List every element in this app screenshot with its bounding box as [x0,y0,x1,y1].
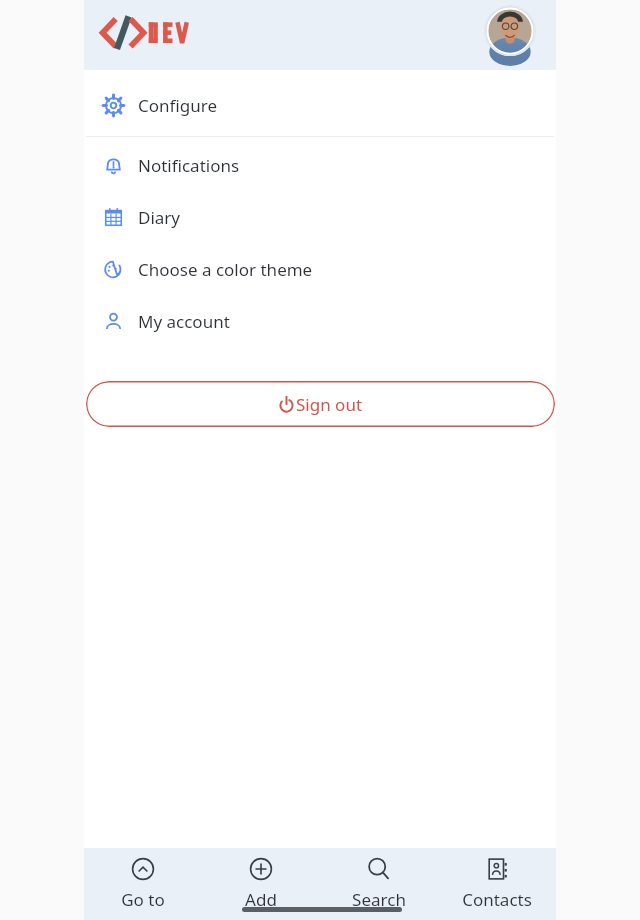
button[interactable]: Go to [84,848,202,920]
staticText: Configure [138,94,217,117]
button[interactable]: Choose a color theme [84,244,556,294]
staticText: My account [138,310,230,333]
button[interactable]: Search [320,848,438,920]
staticText: Sign out [296,393,363,416]
staticText: Diary [138,206,181,229]
button[interactable]: Notifications [84,140,556,190]
button[interactable]: Add [202,848,320,920]
staticText: Go to [121,888,165,911]
staticText: Add [245,888,277,911]
button[interactable]: Configure [84,80,556,130]
button[interactable]: My account [84,296,556,346]
staticText: Notifications [138,154,240,177]
button[interactable]: Profile [485,6,535,56]
staticText: Search [352,888,406,911]
staticText: Contacts [462,888,532,911]
button[interactable]: Diary [84,192,556,242]
button[interactable]: Sign out [86,381,555,427]
button[interactable]: DEV home [100,12,230,58]
staticText: Choose a color theme [138,258,313,281]
button[interactable]: Contacts [438,848,556,920]
